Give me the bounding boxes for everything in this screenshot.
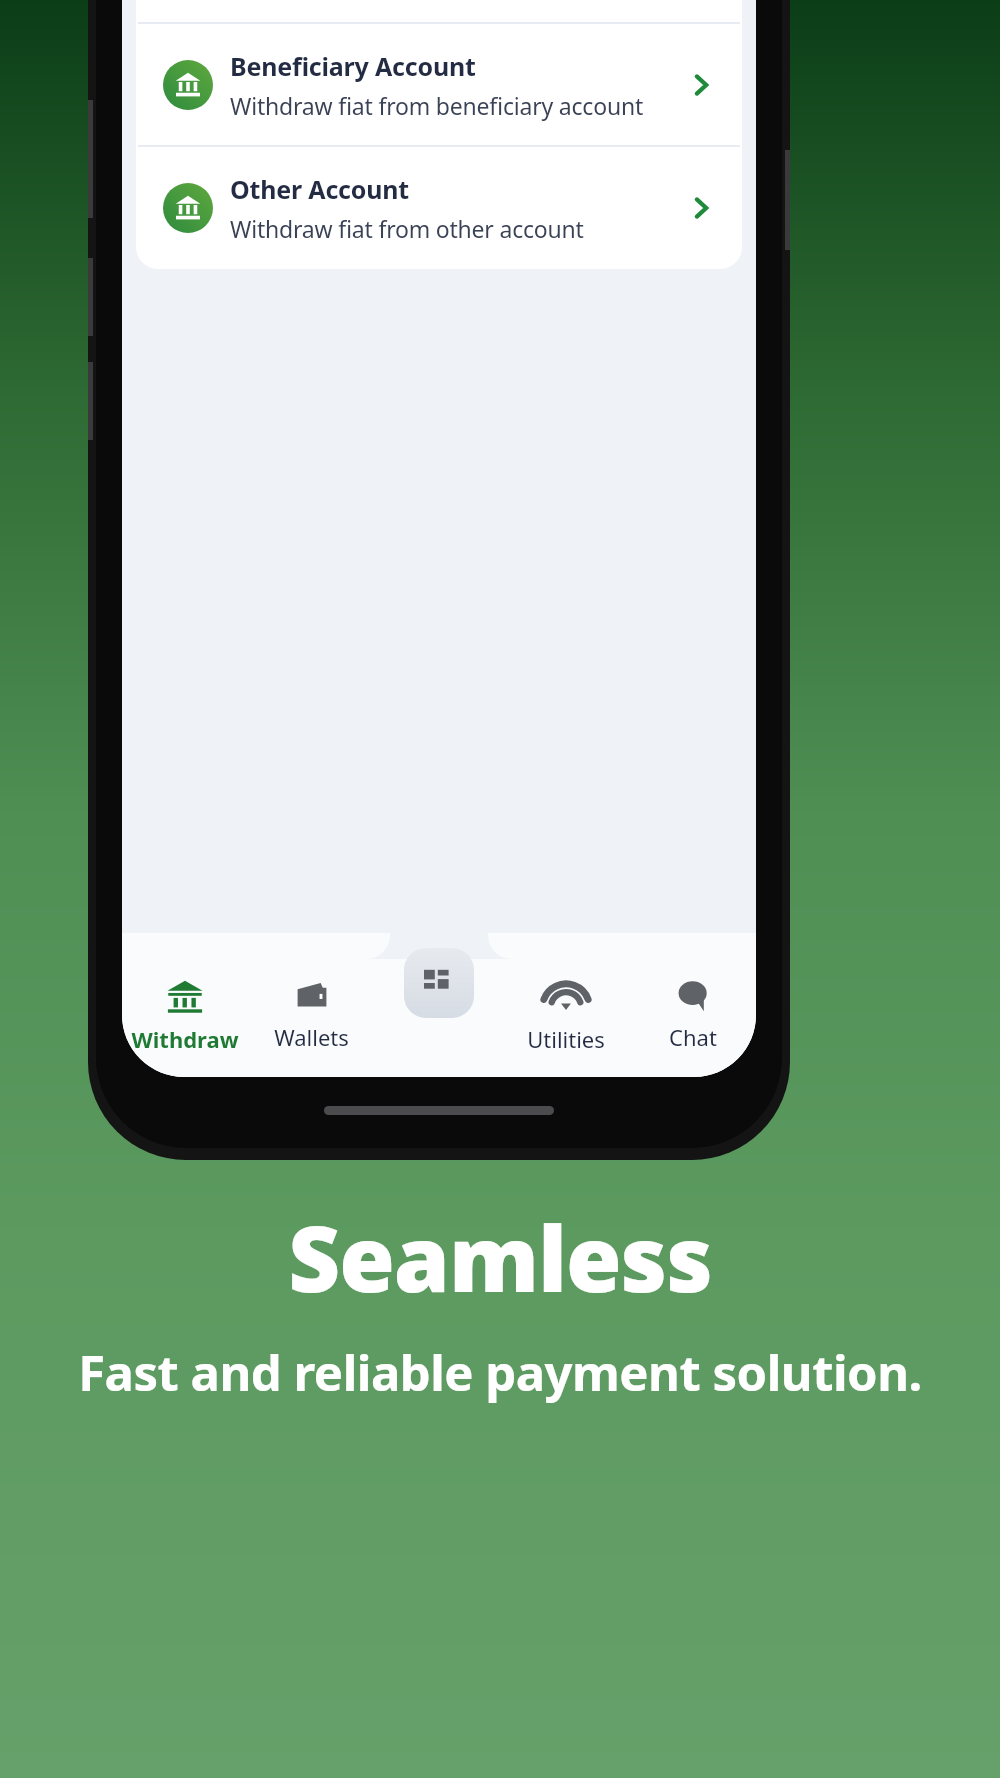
staticText: Other Account	[230, 172, 409, 206]
staticText: Chat	[669, 1022, 717, 1052]
staticText: Wallets	[274, 1022, 349, 1052]
button[interactable]: Beneficiary Account	[136, 24, 742, 145]
button[interactable]: Dashboard	[404, 948, 474, 1018]
button[interactable]: Withdraw	[122, 959, 248, 1077]
button[interactable]: Chat	[629, 959, 756, 1077]
button[interactable]: Other Account	[136, 147, 742, 268]
other: Open Other Account	[684, 191, 718, 225]
staticText: Withdraw fiat from other account	[230, 213, 584, 244]
button[interactable]: Utilities	[502, 959, 629, 1077]
other: Open Beneficiary Account	[684, 68, 718, 102]
staticText: Beneficiary Account	[230, 49, 476, 83]
staticText: Withdraw	[131, 1024, 239, 1054]
staticText: Seamless	[288, 1196, 712, 1319]
staticText: Utilities	[527, 1024, 605, 1054]
button[interactable]: Wallets	[248, 959, 375, 1077]
staticText: Fast and reliable payment solution.	[78, 1339, 922, 1406]
staticText: Withdraw fiat from beneficiary account	[230, 90, 644, 121]
